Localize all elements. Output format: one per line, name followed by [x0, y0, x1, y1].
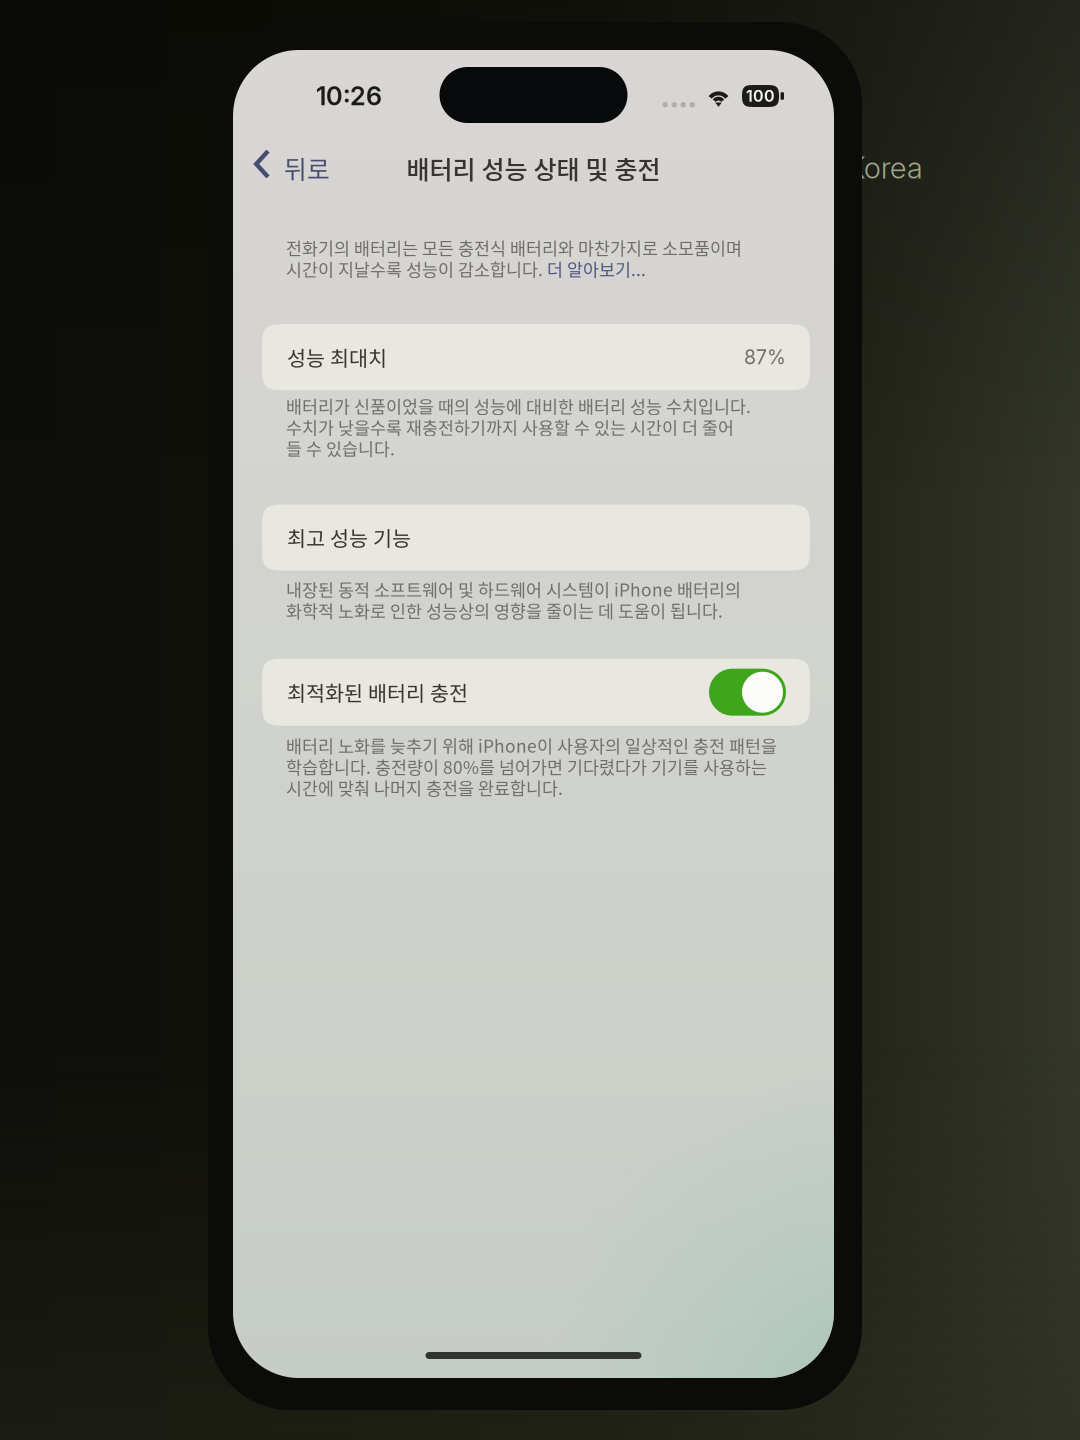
staticText: 배터리 노화를 늦추기 위해 iPhone이 사용자의 일상적인 충전 패턴을	[286, 733, 777, 758]
staticText: 100	[746, 86, 775, 106]
staticText: 수치가 낮을수록 재충전하기까지 사용할 수 있는 시간이 더 줄어	[286, 414, 734, 439]
staticText: 배터리 성능 상태 및 충전	[406, 150, 660, 186]
staticText: 시간이 지날수록 성능이 감소합니다.	[286, 256, 547, 281]
staticText: 10:26	[316, 81, 382, 111]
staticText: 들 수 있습니다.	[286, 435, 395, 460]
staticText: 전화기의 배터리는 모든 충전식 배터리와 마찬가지로 소모품이며	[286, 235, 742, 260]
staticText: 화학적 노화로 인한 성능상의 영향을 줄이는 데 도움이 됩니다.	[286, 598, 723, 623]
button[interactable]: 최고 성능 기능	[262, 504, 810, 570]
staticText: 뒤로	[284, 150, 330, 186]
button[interactable]: 성능 최대치	[262, 324, 810, 390]
staticText: 배터리가 신품이었을 때의 성능에 대비한 배터리 성능 수치입니다.	[286, 393, 751, 418]
staticText: 더 알아보기...	[547, 256, 646, 281]
button[interactable]: 뒤로	[233, 141, 330, 195]
staticText: 최적화된 배터리 충전	[287, 677, 468, 707]
staticText: 내장된 동적 소프트웨어 및 하드웨어 시스템이 iPhone 배터리의	[286, 576, 741, 602]
staticText: 최고 성능 기능	[287, 522, 411, 552]
button[interactable]: 최적화된 배터리 충전	[262, 659, 810, 726]
staticText: 87%	[744, 345, 786, 369]
staticText: 성능 최대치	[287, 342, 387, 372]
staticText: 학습합니다. 충전량이 80%를 넘어가면 기다렸다가 기기를 사용하는	[286, 754, 767, 779]
staticText: Korea	[847, 150, 923, 185]
staticText: 시간에 맞춰 나머지 충전을 완료합니다.	[286, 775, 563, 800]
